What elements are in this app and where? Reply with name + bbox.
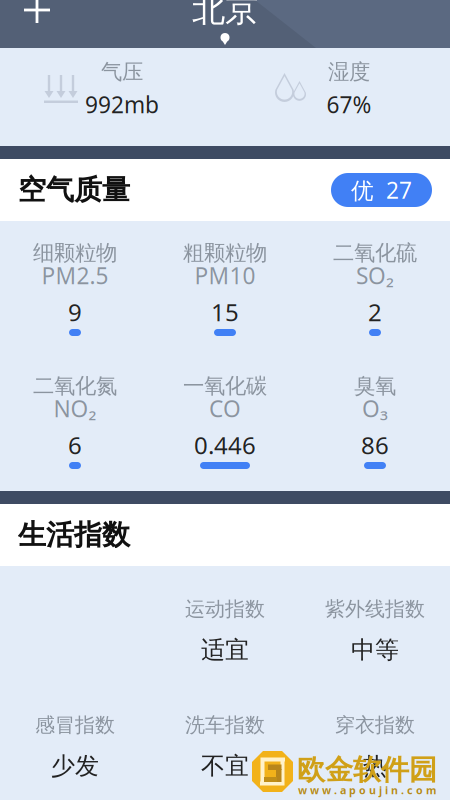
staticText: 湿度 (328, 59, 370, 85)
staticText: 一氧化碳 (183, 373, 267, 399)
staticText: 992mb (85, 89, 159, 119)
staticText: 粗颗粒物 (183, 240, 267, 266)
staticText: 2 (368, 296, 382, 328)
staticText: 二氧化氮 (33, 373, 117, 399)
staticText: 二氧化硫 (333, 240, 417, 266)
staticText: NO₂ (53, 393, 96, 423)
button[interactable]: 感冒指数 (0, 714, 150, 779)
staticText: 北京 (192, 0, 258, 30)
staticText: 0.446 (194, 429, 256, 461)
staticText: 67% (326, 89, 371, 119)
staticText: 少发 (51, 751, 99, 781)
staticText: PM10 (194, 260, 255, 290)
staticText: PM2.5 (41, 260, 108, 290)
button[interactable]: 洗车指数 (150, 714, 300, 779)
staticText: 细颗粒物 (33, 240, 117, 266)
button[interactable]: 穿衣指数 (300, 714, 450, 779)
staticText: 欧金软件园 (297, 753, 437, 787)
button[interactable]: 紫外线指数 (300, 598, 450, 663)
staticText: 穿衣指数 (335, 713, 415, 737)
staticText: 紫外线指数 (325, 597, 425, 621)
staticText: 感冒指数 (35, 713, 115, 737)
staticText: 生活指数 (18, 518, 130, 552)
staticText: 臭氧 (354, 373, 396, 399)
staticText: 9 (68, 296, 82, 328)
staticText: 热 (363, 751, 387, 781)
staticText: CO (209, 393, 241, 423)
staticText: 适宜 (201, 635, 249, 665)
staticText: 6 (68, 429, 82, 461)
staticText: 不宜 (201, 751, 249, 781)
staticText: SO₂ (356, 260, 394, 290)
button[interactable]: 优 27 (331, 173, 432, 207)
staticText: w w w . a p o u j i n . c o m (298, 783, 436, 797)
staticText: 优 27 (351, 175, 412, 205)
staticText: 气压 (101, 59, 143, 85)
staticText: 洗车指数 (185, 713, 265, 737)
staticText: 86 (361, 429, 389, 461)
staticText: 15 (211, 296, 239, 328)
staticText: 中等 (351, 635, 399, 665)
button[interactable]: Add city (15, 0, 59, 32)
staticText: O₃ (362, 393, 388, 423)
button[interactable]: 运动指数 (150, 598, 300, 663)
staticText: 运动指数 (185, 597, 265, 621)
staticText: 空气质量 (18, 173, 130, 207)
